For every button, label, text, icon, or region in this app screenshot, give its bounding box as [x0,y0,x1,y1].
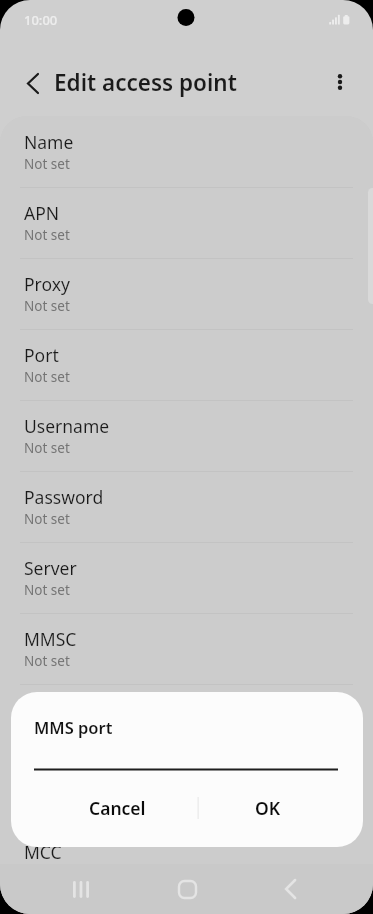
staticText: MMS port [34,716,113,738]
staticText: 10:00 [24,11,58,29]
button[interactable]: Recents [57,865,105,913]
staticText: Not set [24,581,70,599]
staticText: Username [24,414,110,438]
staticText: MMSC [24,627,77,651]
staticText: Not set [24,439,70,457]
button[interactable]: Name [0,116,373,187]
button[interactable]: Server [0,542,373,613]
button[interactable]: MCC [0,826,373,866]
button[interactable]: More options [318,60,362,104]
staticText: Port [24,343,59,367]
staticText: MMS port [24,769,105,793]
staticText: Not set [24,155,70,173]
button[interactable]: APN [0,187,373,258]
button[interactable]: OK [187,788,362,828]
button[interactable]: Port [0,329,373,400]
button[interactable]: Password [0,471,373,542]
staticText: OK [255,796,281,820]
button[interactable]: MMS port [0,755,373,826]
button[interactable]: Username [0,400,373,471]
button[interactable]: Navigate up [11,61,55,105]
button[interactable]: Home [163,865,211,913]
button[interactable]: Proxy [0,258,373,329]
staticText: Not set [24,652,70,670]
button[interactable]: Back [266,865,314,913]
staticText: Name [24,130,74,154]
staticText: Password [24,485,104,509]
button[interactable]: MMS proxy [0,684,373,755]
staticText: APN [24,201,60,225]
staticText: MCC [24,840,62,864]
staticText: Cancel [89,796,146,820]
staticText: Not set [24,510,70,528]
staticText: Not set [24,297,70,315]
staticText: Not set [24,226,70,244]
staticText: Server [24,556,77,580]
staticText: Proxy [24,272,70,296]
button[interactable]: MMSC [0,613,373,684]
button[interactable]: Cancel [11,788,187,828]
staticText: Edit access point [54,67,237,98]
staticText: Not set [24,368,70,386]
staticText: Not set [24,723,70,741]
